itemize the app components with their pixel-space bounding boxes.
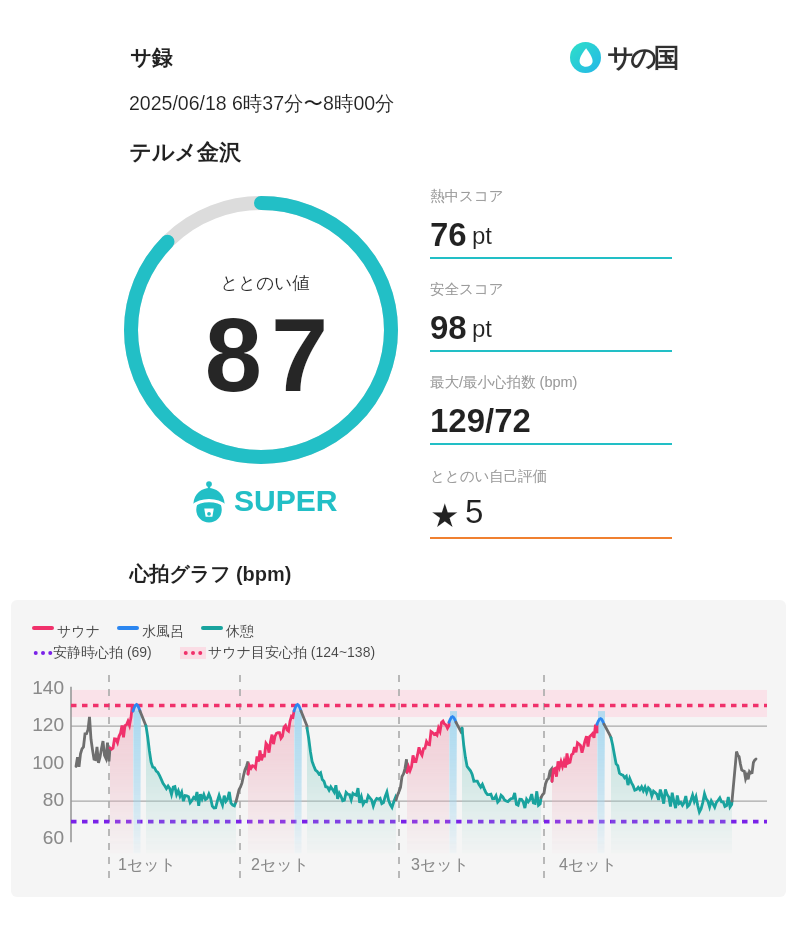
staticText: 76: [430, 216, 467, 253]
staticText: 安静時心拍 (69): [53, 644, 152, 662]
staticText: 2セット: [251, 855, 310, 875]
button[interactable]: [11, 600, 786, 897]
staticText: サの国: [607, 42, 676, 75]
button[interactable]: 熱中スコア: [430, 191, 672, 271]
staticText: 140: [26, 677, 64, 698]
staticText: 水風呂: [142, 623, 184, 641]
staticText: ととのい値: [128, 272, 402, 294]
staticText: 60: [26, 827, 64, 848]
staticText: pt: [472, 315, 493, 342]
staticText: 5: [465, 493, 484, 530]
button[interactable]: 安全スコア: [430, 284, 672, 364]
staticText: 熱中スコア: [430, 187, 504, 205]
staticText: ととのい自己評価: [430, 467, 548, 485]
staticText: 100: [26, 752, 64, 773]
staticText: pt: [472, 222, 493, 249]
other: ととのい値 87: [124, 196, 398, 464]
staticText: ★: [430, 496, 460, 534]
staticText: 80: [26, 789, 64, 810]
staticText: 129/72: [430, 402, 531, 439]
other: SUPER ととのい: [192, 481, 226, 522]
staticText: 安全スコア: [430, 280, 504, 298]
button[interactable]: サの国 logo: [570, 41, 676, 74]
staticText: 120: [26, 714, 64, 735]
staticText: SUPER: [234, 484, 338, 518]
staticText: 最大/最小心拍数 (bpm): [430, 373, 578, 391]
staticText: 4セット: [559, 855, 618, 875]
staticText: 87: [134, 298, 408, 413]
staticText: 3セット: [411, 855, 470, 875]
staticText: 1セット: [118, 855, 177, 875]
staticText: テルメ金沢: [129, 139, 241, 167]
staticText: 心拍グラフ (bpm): [129, 562, 292, 587]
staticText: 休憩: [226, 623, 254, 641]
staticText: 2025/06/18 6時37分〜8時00分: [129, 91, 395, 116]
staticText: サ録: [130, 45, 173, 71]
other: サの国 logo: [570, 42, 601, 73]
staticText: サウナ目安心拍 (124~138): [208, 644, 376, 662]
button[interactable]: 最大/最小心拍数 (bpm): [430, 377, 672, 457]
button[interactable]: SUPER ととのい: [192, 481, 338, 522]
staticText: 98: [430, 309, 467, 346]
button[interactable]: ととのい自己評価: [430, 471, 672, 551]
staticText: サウナ: [57, 623, 100, 641]
